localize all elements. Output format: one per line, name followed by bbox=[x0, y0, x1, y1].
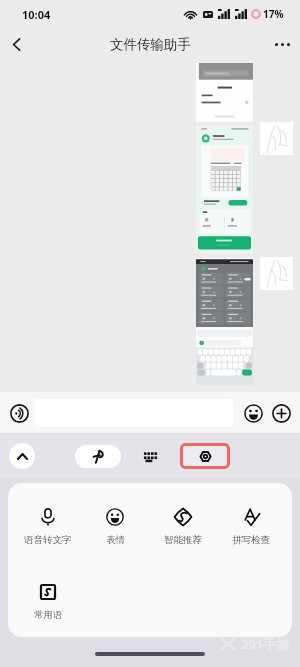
button[interactable]: 语音转文字 bbox=[14, 508, 81, 546]
staticText: 拼写检查 bbox=[232, 534, 270, 546]
staticText: 291手游 bbox=[241, 635, 290, 653]
button[interactable]: Keyboard layout bbox=[138, 444, 162, 468]
staticText: 智能推荐 bbox=[164, 534, 202, 546]
button[interactable]: 表情 bbox=[81, 508, 149, 546]
button[interactable] bbox=[196, 126, 253, 253]
button[interactable]: Emoji bbox=[241, 401, 265, 425]
staticText: 文件传输助手 bbox=[110, 36, 191, 53]
staticText: 常用语 bbox=[34, 609, 63, 621]
button[interactable] bbox=[196, 258, 253, 385]
button[interactable]: Pinyin input bbox=[75, 445, 121, 468]
staticText: 语音转文字 bbox=[24, 534, 72, 546]
button[interactable]: More options bbox=[264, 28, 300, 60]
button[interactable]: 常用语 bbox=[14, 583, 82, 621]
button[interactable] bbox=[196, 63, 253, 122]
button[interactable]: 拼写检查 bbox=[217, 508, 285, 546]
button[interactable]: 智能推荐 bbox=[149, 508, 217, 546]
button[interactable]: More functions bbox=[269, 401, 293, 425]
button[interactable]: Settings bbox=[180, 443, 230, 469]
staticText: 10:04 bbox=[22, 7, 51, 22]
button[interactable]: Back bbox=[0, 28, 32, 60]
button[interactable]: Collapse keyboard bbox=[9, 443, 35, 469]
staticText: 17% bbox=[263, 7, 284, 21]
staticText: 表情 bbox=[106, 534, 125, 546]
button[interactable]: Voice input bbox=[6, 400, 32, 426]
